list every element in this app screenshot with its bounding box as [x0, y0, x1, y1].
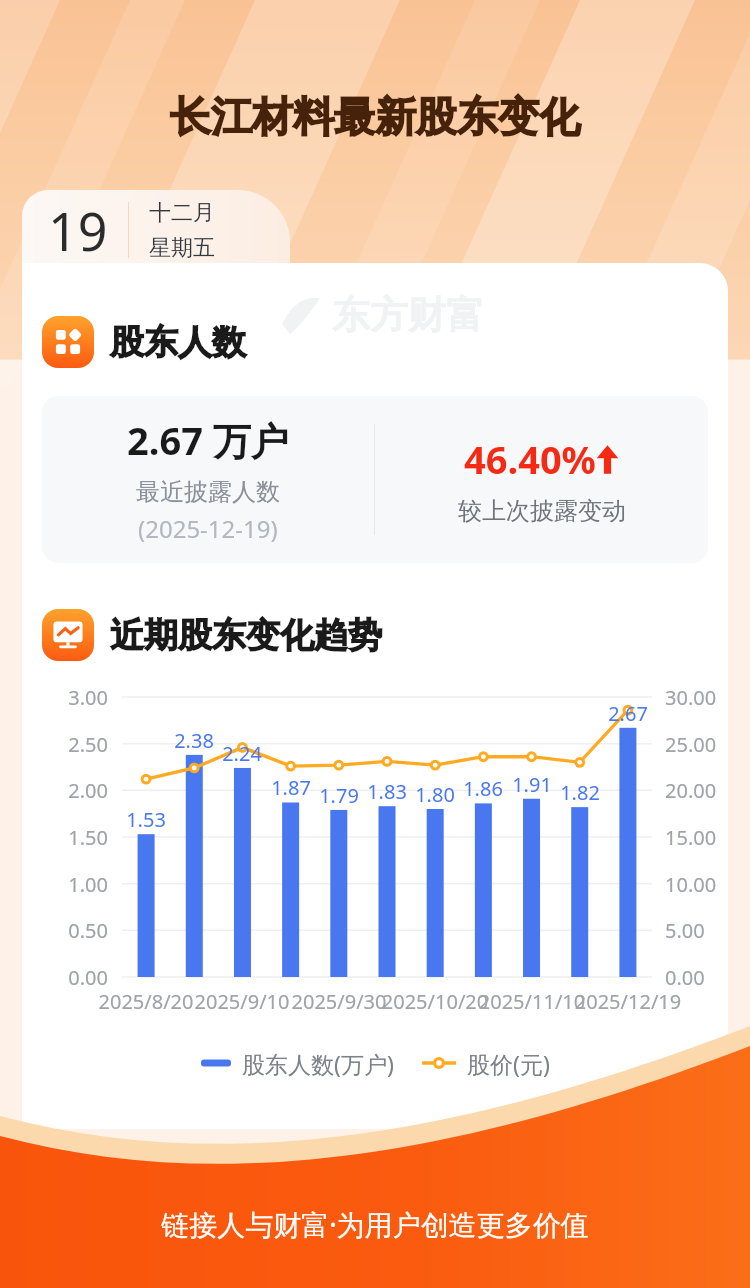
staticText: 0.00	[665, 964, 728, 991]
staticText: 长江材料最新股东变化	[0, 92, 750, 144]
staticText: 20.00	[665, 777, 728, 804]
staticText: 1.82	[549, 779, 611, 806]
staticText: 最近披露人数	[136, 477, 280, 507]
staticText: 2025/11/10	[476, 988, 588, 1015]
staticText: 2.38	[163, 727, 225, 754]
button[interactable]: 2.67 万户	[42, 396, 708, 563]
staticText: 46.40%	[464, 433, 596, 485]
staticText: 1.79	[308, 782, 370, 809]
staticText: 股东人数(万户)	[242, 1048, 394, 1079]
staticText: 5.00	[665, 917, 728, 944]
other: 趋势图	[42, 609, 94, 661]
staticText: 30.00	[665, 684, 728, 711]
staticText: 3.00	[30, 684, 108, 711]
button[interactable]: 趋势图	[42, 609, 728, 661]
staticText: 1.87	[260, 774, 322, 801]
staticText: 1.83	[356, 778, 418, 805]
staticText: 2025/8/20	[90, 988, 202, 1015]
staticText: (2025-12-19)	[138, 512, 278, 545]
staticText: 1.80	[404, 781, 466, 808]
staticText: 股东人数	[110, 321, 246, 364]
staticText: 15.00	[665, 824, 728, 851]
staticText: 2025/9/10	[186, 988, 298, 1015]
staticText: 股价(元)	[467, 1048, 550, 1079]
staticText: 25.00	[665, 731, 728, 758]
staticText: 1.86	[452, 775, 514, 802]
other: 股东人数	[42, 316, 94, 368]
staticText: 较上次披露变动	[458, 496, 626, 526]
staticText: 2.00	[30, 777, 108, 804]
staticText: 链接人与财富·为用户创造更多价值	[161, 1205, 589, 1243]
staticText: 2025/12/19	[572, 988, 684, 1015]
staticText: 星期五	[149, 234, 215, 262]
staticText: 10.00	[665, 871, 728, 898]
staticText: 1.53	[115, 806, 177, 833]
staticText: 19	[48, 195, 108, 266]
staticText: 2.50	[30, 731, 108, 758]
staticText: 东方财富	[332, 291, 484, 339]
staticText: 2.67 万户	[127, 414, 289, 466]
staticText: 2.67	[597, 700, 659, 727]
button[interactable]: 股东人数	[42, 316, 728, 368]
button[interactable]: 19	[22, 190, 290, 270]
staticText: 2025/9/30	[283, 988, 395, 1015]
staticText: 2.24	[211, 740, 273, 767]
staticText: 1.00	[30, 871, 108, 898]
staticText: 1.50	[30, 824, 108, 851]
staticText: 十二月	[149, 199, 215, 227]
staticText: 2025/10/20	[379, 988, 491, 1015]
staticText: 1.91	[501, 771, 563, 798]
staticText: 0.50	[30, 917, 108, 944]
staticText: 近期股东变化趋势	[110, 614, 382, 657]
staticText: 0.00	[30, 964, 108, 991]
